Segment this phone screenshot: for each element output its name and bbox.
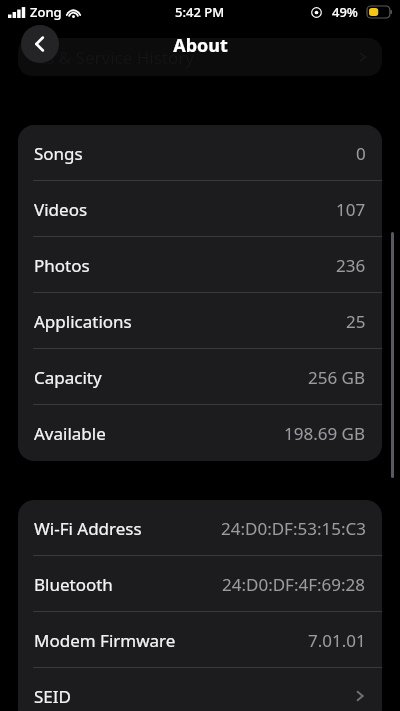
staticText: 25 <box>346 310 366 333</box>
staticText: 7.01.01 <box>308 629 366 652</box>
button[interactable]: Applications <box>18 293 382 349</box>
button[interactable]: Photos <box>18 237 382 293</box>
staticText: Bluetooth <box>34 573 113 596</box>
staticText: Songs <box>34 142 83 165</box>
staticText: 198.69 GB <box>284 422 366 445</box>
button[interactable]: Bluetooth <box>18 556 382 612</box>
staticText: 0 <box>356 142 366 165</box>
staticText: 236 <box>336 254 366 277</box>
staticText: Applications <box>34 310 132 333</box>
staticText: 107 <box>336 198 366 221</box>
staticText: ts & Service History <box>40 46 194 69</box>
button[interactable]: Available <box>18 405 382 461</box>
staticText: 24:D0:DF:53:15:C3 <box>221 517 366 540</box>
staticText: Modem Firmware <box>34 629 176 652</box>
button[interactable]: Wi-Fi Address <box>18 500 382 556</box>
staticText: Photos <box>34 254 90 277</box>
button[interactable]: Songs <box>18 125 382 181</box>
staticText: Wi-Fi Address <box>34 517 142 540</box>
staticText: Available <box>34 422 106 445</box>
staticText: 49% <box>332 3 358 21</box>
staticText: SEID <box>34 685 71 708</box>
button[interactable]: Back <box>21 25 59 63</box>
button[interactable]: Videos <box>18 181 382 237</box>
button[interactable]: Modem Firmware <box>18 612 382 668</box>
staticText: 256 GB <box>308 366 366 389</box>
staticText: Zong <box>30 3 62 21</box>
staticText: 5:42 PM <box>175 3 225 21</box>
button[interactable]: SEID <box>18 668 382 711</box>
staticText: Capacity <box>34 366 102 389</box>
staticText: 24:D0:DF:4F:69:28 <box>222 573 366 596</box>
staticText: Videos <box>34 198 88 221</box>
staticText: About <box>173 33 228 58</box>
button[interactable]: Capacity <box>18 349 382 405</box>
